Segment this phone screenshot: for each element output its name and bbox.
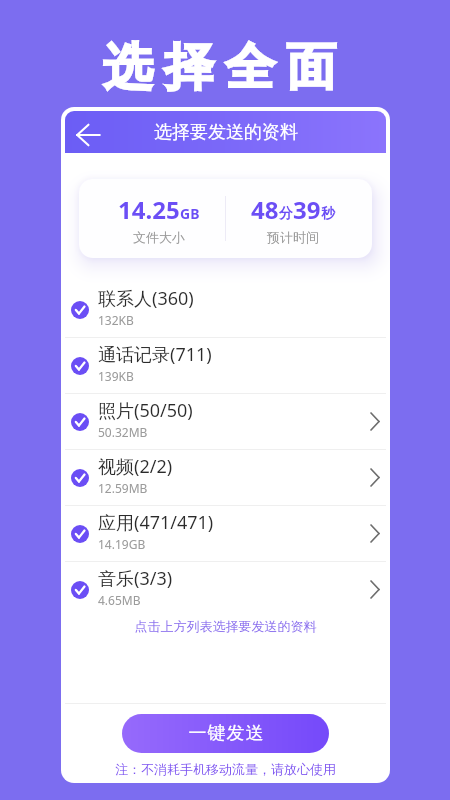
staticText: 分 <box>279 205 293 223</box>
staticText: 通话记录(711) <box>98 342 212 367</box>
staticText: 12.59MB <box>98 480 148 496</box>
staticText: 视频(2/2) <box>98 454 173 479</box>
staticText: 注：不消耗手机移动流量，请放心使用 <box>61 761 390 777</box>
button[interactable]: 视频(2/2) <box>61 450 390 505</box>
button[interactable]: 返回 <box>68 115 108 153</box>
staticText: 秒 <box>321 205 335 223</box>
staticText: 139KB <box>98 368 134 384</box>
staticText: 应用(471/471) <box>98 510 214 535</box>
staticText: 联系人(360) <box>98 286 194 311</box>
staticText: 4.65MB <box>98 592 141 608</box>
staticText: 文件大小 <box>133 229 185 245</box>
button[interactable]: 联系人(360) <box>61 282 390 337</box>
staticText: 50.32MB <box>98 424 148 440</box>
staticText: 一键发送 <box>188 722 264 745</box>
button[interactable]: 通话记录(711) <box>61 338 390 393</box>
staticText: GB <box>180 204 200 223</box>
button[interactable]: 音乐(3/3) <box>61 562 390 617</box>
staticText: 14.19GB <box>98 536 146 552</box>
staticText: 照片(50/50) <box>98 398 193 423</box>
button[interactable]: 照片(50/50) <box>61 394 390 449</box>
button[interactable]: 一键发送 <box>122 714 329 753</box>
staticText: 音乐(3/3) <box>98 566 173 591</box>
staticText: 点击上方列表选择要发送的资料 <box>61 618 390 634</box>
staticText: 选择要发送的资料 <box>154 121 298 144</box>
staticText: 48 <box>251 193 279 226</box>
staticText: 预计时间 <box>267 229 319 245</box>
button[interactable]: 应用(471/471) <box>61 506 390 561</box>
staticText: 选择全面 <box>0 36 450 99</box>
staticText: 14.25 <box>118 193 180 226</box>
staticText: 39 <box>293 193 321 226</box>
staticText: 132KB <box>98 312 134 328</box>
